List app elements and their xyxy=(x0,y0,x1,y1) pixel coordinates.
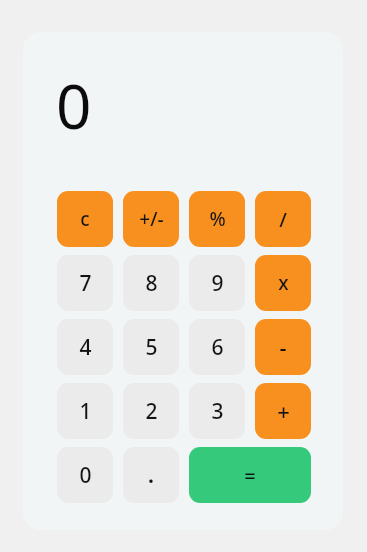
staticText: 1 xyxy=(79,397,92,426)
button[interactable]: 5 xyxy=(123,319,179,375)
button[interactable]: . xyxy=(123,447,179,503)
staticText: x xyxy=(278,270,289,296)
staticText: 9 xyxy=(211,269,224,298)
staticText: +/- xyxy=(139,206,164,232)
button[interactable]: x xyxy=(255,255,311,311)
staticText: 6 xyxy=(211,333,224,362)
staticText: 5 xyxy=(145,333,158,362)
staticText: . xyxy=(148,461,154,490)
button[interactable]: = xyxy=(189,447,311,503)
button[interactable]: 3 xyxy=(189,383,245,439)
staticText: / xyxy=(279,206,287,233)
button[interactable]: 6 xyxy=(189,319,245,375)
button[interactable]: 0 xyxy=(57,447,113,503)
staticText: - xyxy=(279,332,287,362)
button[interactable]: % xyxy=(189,191,245,247)
staticText: 3 xyxy=(211,397,224,426)
staticText: % xyxy=(209,206,226,232)
button[interactable]: 2 xyxy=(123,383,179,439)
staticText: 4 xyxy=(79,333,92,362)
staticText: + xyxy=(277,396,290,426)
staticText: = xyxy=(244,462,256,489)
button[interactable]: 4 xyxy=(57,319,113,375)
button[interactable]: c xyxy=(57,191,113,247)
button[interactable]: 9 xyxy=(189,255,245,311)
staticText: 8 xyxy=(145,269,158,298)
button[interactable]: 1 xyxy=(57,383,113,439)
staticText: 2 xyxy=(145,397,158,426)
staticText: 7 xyxy=(79,269,92,298)
button[interactable]: + xyxy=(255,383,311,439)
button[interactable]: / xyxy=(255,191,311,247)
button[interactable]: 7 xyxy=(57,255,113,311)
staticText: c xyxy=(80,206,90,232)
button[interactable]: - xyxy=(255,319,311,375)
staticText: 0 xyxy=(56,63,92,147)
button[interactable]: +/- xyxy=(123,191,179,247)
staticText: 0 xyxy=(79,461,92,490)
button[interactable]: 8 xyxy=(123,255,179,311)
